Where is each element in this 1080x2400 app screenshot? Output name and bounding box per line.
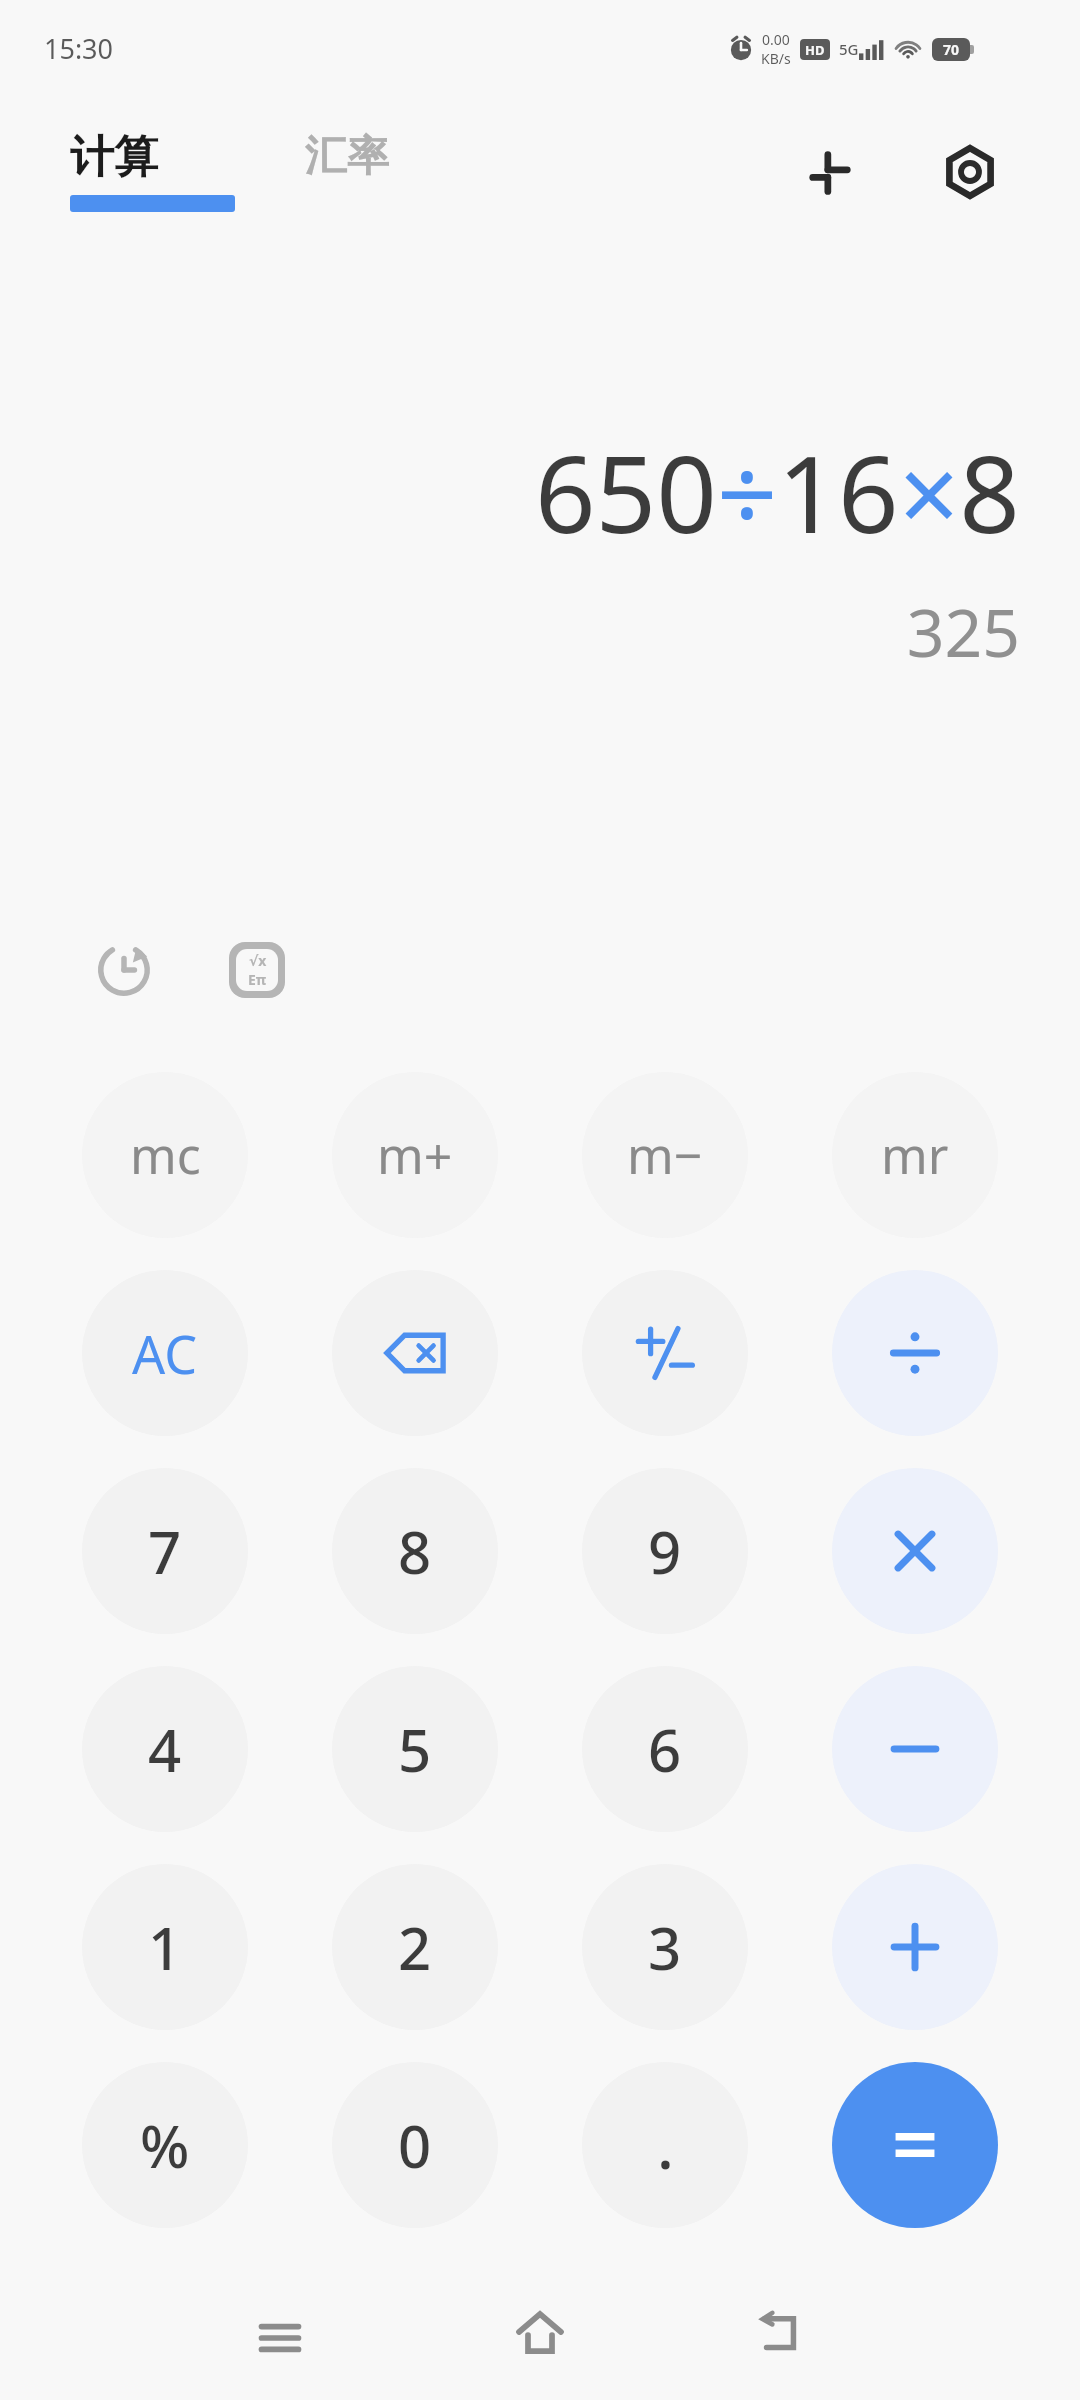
staticText: 3 <box>648 1908 682 1987</box>
button[interactable] <box>832 1270 998 1436</box>
staticText: 2 <box>398 1908 432 1987</box>
button[interactable]: 4 <box>82 1666 248 1832</box>
button[interactable]: 汇率 <box>305 130 389 183</box>
button[interactable]: 6 <box>582 1666 748 1832</box>
button[interactable]: Scientific functions <box>217 930 297 1010</box>
button[interactable]: 2 <box>332 1864 498 2030</box>
button[interactable] <box>832 1864 998 2030</box>
button[interactable] <box>832 1468 998 1634</box>
button[interactable]: Backspace <box>332 1270 498 1436</box>
staticText: 5 <box>398 1710 432 1789</box>
button[interactable]: 1 <box>82 1864 248 2030</box>
staticText: 0 <box>398 2106 432 2185</box>
staticText: 1 <box>148 1908 182 1987</box>
staticText: HD <box>805 41 825 59</box>
staticText: 70 <box>943 40 960 59</box>
button[interactable]: 8 <box>332 1468 498 1634</box>
button[interactable]: History <box>84 930 164 1010</box>
button[interactable]: 7 <box>82 1468 248 1634</box>
staticText: . <box>657 2103 674 2187</box>
button[interactable]: m− <box>582 1072 748 1238</box>
button[interactable]: Recents <box>240 2298 320 2378</box>
button[interactable] <box>832 1666 998 1832</box>
button[interactable]: 计算 <box>70 130 158 185</box>
staticText: 650÷16×8 <box>534 420 1020 564</box>
button[interactable]: m+ <box>332 1072 498 1238</box>
staticText: % <box>140 2106 190 2185</box>
button[interactable]: 0 <box>332 2062 498 2228</box>
staticText: 15:30 <box>44 30 114 67</box>
staticText: m− <box>627 1121 703 1189</box>
staticText: √x <box>249 951 267 970</box>
staticText: 5G <box>839 39 859 59</box>
staticText: 7 <box>148 1512 182 1591</box>
button[interactable]: mr <box>832 1072 998 1238</box>
button[interactable]: AC <box>82 1270 248 1436</box>
staticText: 4 <box>148 1710 182 1789</box>
staticText: m+ <box>377 1121 453 1189</box>
staticText: mr <box>881 1121 949 1189</box>
button[interactable]: 5 <box>332 1666 498 1832</box>
button[interactable]: Settings <box>930 132 1010 212</box>
staticText: 325 <box>906 586 1020 676</box>
staticText: 9 <box>648 1512 682 1591</box>
staticText: mc <box>130 1121 201 1189</box>
staticText: 0.00 <box>762 30 790 49</box>
button[interactable]: Expand <box>790 132 870 212</box>
staticText: 6 <box>648 1710 682 1789</box>
button[interactable]: Home <box>500 2294 580 2374</box>
button[interactable]: Plus minus <box>582 1270 748 1436</box>
button[interactable]: Back <box>740 2294 820 2374</box>
button[interactable]: 3 <box>582 1864 748 2030</box>
button[interactable]: . <box>582 2062 748 2228</box>
button[interactable]: mc <box>82 1072 248 1238</box>
staticText: Eπ <box>248 970 267 989</box>
staticText: AC <box>132 1318 198 1389</box>
staticText: 8 <box>398 1512 432 1591</box>
staticText: KB/s <box>761 49 791 68</box>
button[interactable]: % <box>82 2062 248 2228</box>
button[interactable] <box>832 2062 998 2228</box>
button[interactable]: 9 <box>582 1468 748 1634</box>
